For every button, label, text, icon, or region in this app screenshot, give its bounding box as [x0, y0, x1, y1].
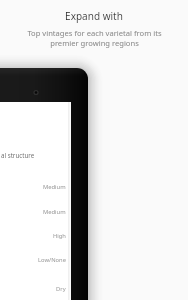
staticText: High: [53, 232, 66, 240]
staticText: Medium: [43, 208, 66, 216]
staticText: premier growing regions: [50, 38, 139, 48]
staticText: Expand with: [65, 9, 123, 23]
staticText: Dry: [56, 285, 66, 293]
button[interactable]: Medium: [0, 182, 66, 191]
staticText: al structure: [1, 151, 35, 159]
staticText: Top vintages for each varietal from its: [27, 28, 162, 38]
button[interactable]: Medium: [0, 207, 66, 216]
staticText: Low/None: [38, 256, 66, 264]
button[interactable]: Dry: [0, 284, 66, 293]
staticText: Medium: [43, 183, 66, 191]
button[interactable]: Tablet screenshot preview: [0, 0, 188, 300]
button[interactable]: High: [0, 231, 66, 240]
button[interactable]: Low/None: [0, 255, 66, 264]
